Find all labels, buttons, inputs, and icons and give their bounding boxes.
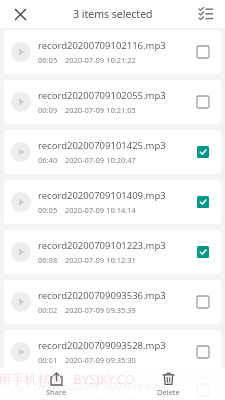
- staticText: record20200709101223.mp3: [38, 239, 166, 252]
- staticText: 00:08: [38, 255, 58, 265]
- button[interactable]: Play: [10, 291, 32, 313]
- staticText: 2020-07-09 09:35:30: [65, 355, 136, 365]
- staticText: 2020-07-09 10:12:31: [65, 255, 136, 265]
- button[interactable]: Selected: [193, 192, 213, 212]
- button[interactable]: Select all: [195, 3, 217, 25]
- button[interactable]: Play: [4, 230, 221, 274]
- staticText: record20200709093528.mp3: [38, 339, 166, 352]
- button[interactable]: Play: [4, 30, 221, 74]
- staticText: 2020-07-09 10:20:47: [65, 155, 136, 165]
- staticText: Delete: [157, 387, 180, 397]
- staticText: 2020-07-09 09:35:39: [65, 305, 136, 315]
- staticText: 3 items selected: [73, 7, 153, 21]
- button[interactable]: Play: [10, 91, 32, 113]
- button[interactable]: Not selected: [193, 92, 213, 112]
- button[interactable]: Play: [10, 41, 32, 63]
- button[interactable]: Play: [10, 241, 32, 263]
- button[interactable]: Selected: [193, 242, 213, 262]
- button[interactable]: Not selected: [193, 292, 213, 312]
- button[interactable]: Not selected: [193, 342, 213, 362]
- button[interactable]: Play: [4, 180, 221, 224]
- staticText: 00:01: [38, 355, 58, 365]
- button[interactable]: Play: [4, 330, 221, 374]
- staticText: record20200709093536.mp3: [38, 289, 166, 302]
- button[interactable]: Play: [4, 280, 221, 324]
- button[interactable]: Play: [4, 380, 221, 400]
- staticText: 2020-07-09 10:21:05: [65, 105, 136, 115]
- staticText: Share: [46, 387, 67, 397]
- button[interactable]: Not selected: [193, 42, 213, 62]
- staticText: 00:05: [38, 205, 58, 215]
- button[interactable]: Play: [4, 80, 221, 124]
- button[interactable]: Delete: [112, 368, 225, 400]
- staticText: record20200709093518.mp3: [38, 380, 166, 393]
- button[interactable]: Play: [10, 341, 32, 363]
- button[interactable]: Play: [10, 380, 32, 400]
- staticText: 2020-07-09 10:14:14: [65, 205, 136, 215]
- staticText: 2020-07-09 10:21:22: [65, 55, 136, 65]
- staticText: 00:09: [38, 105, 58, 115]
- staticText: record20200709101425.mp3: [38, 139, 166, 152]
- staticText: record20200709102116.mp3: [38, 39, 166, 52]
- button[interactable]: Share: [0, 368, 112, 400]
- staticText: 用手机精选 · BYSJXY.CO: [0, 370, 135, 388]
- staticText: 00:05: [38, 55, 58, 65]
- staticText: record20200709101409.mp3: [38, 189, 166, 202]
- staticText: record20200709102055.mp3: [38, 89, 166, 102]
- button[interactable]: Play: [10, 191, 32, 213]
- staticText: 06:40: [38, 155, 58, 165]
- button[interactable]: Selected: [193, 142, 213, 162]
- button[interactable]: Play: [10, 141, 32, 163]
- staticText: 00:02: [38, 305, 58, 315]
- button[interactable]: Play: [4, 130, 221, 174]
- button[interactable]: Close: [8, 2, 32, 26]
